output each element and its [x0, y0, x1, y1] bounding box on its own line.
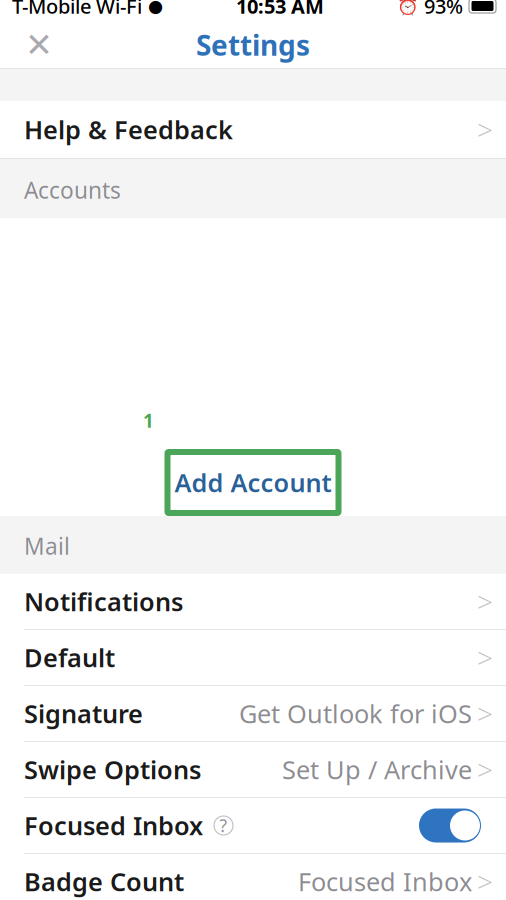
staticText: >	[477, 695, 493, 732]
staticText: 10:53 AM	[236, 0, 324, 19]
button[interactable]: Signature	[0, 686, 506, 741]
staticText: ●	[148, 0, 163, 16]
button[interactable]: Help & Feedback	[0, 101, 506, 158]
staticText: ✕	[25, 26, 53, 64]
button[interactable]: Close	[17, 23, 61, 67]
staticText: Focused Inbox	[298, 865, 472, 898]
staticText: >	[477, 111, 493, 148]
staticText: Help & Feedback	[24, 113, 233, 146]
staticText: Badge Count	[24, 865, 184, 898]
staticText: 1	[143, 408, 154, 433]
staticText: Notifications	[24, 585, 183, 618]
staticText: Add Account	[174, 466, 331, 499]
staticText: ?	[219, 814, 227, 837]
staticText: >	[477, 583, 493, 620]
button[interactable]: About Focused Inbox	[214, 816, 233, 835]
staticText: 93%	[424, 0, 463, 19]
staticText: Swipe Options	[24, 753, 201, 786]
button[interactable]: Focused Inbox, on	[419, 808, 481, 842]
staticText: Focused Inbox	[24, 809, 203, 842]
staticText: Mail	[24, 531, 70, 561]
button[interactable]: Notifications	[0, 574, 506, 629]
staticText: Get Outlook for iOS	[239, 697, 472, 730]
button[interactable]: Default	[0, 630, 506, 685]
staticText: Settings	[196, 26, 310, 64]
staticText: >	[477, 639, 493, 676]
button[interactable]: Add Account	[167, 452, 338, 513]
button[interactable]: Swipe Options	[0, 742, 506, 797]
staticText: >	[477, 863, 493, 900]
button[interactable]: Badge Count	[0, 854, 506, 900]
staticText: >	[477, 751, 493, 788]
staticText: Default	[24, 641, 115, 674]
staticText: ⏰	[397, 0, 419, 16]
staticText: Signature	[24, 697, 143, 730]
staticText: T-Mobile Wi-Fi	[12, 0, 142, 19]
staticText: Accounts	[24, 175, 121, 205]
staticText: Set Up / Archive	[282, 753, 472, 786]
